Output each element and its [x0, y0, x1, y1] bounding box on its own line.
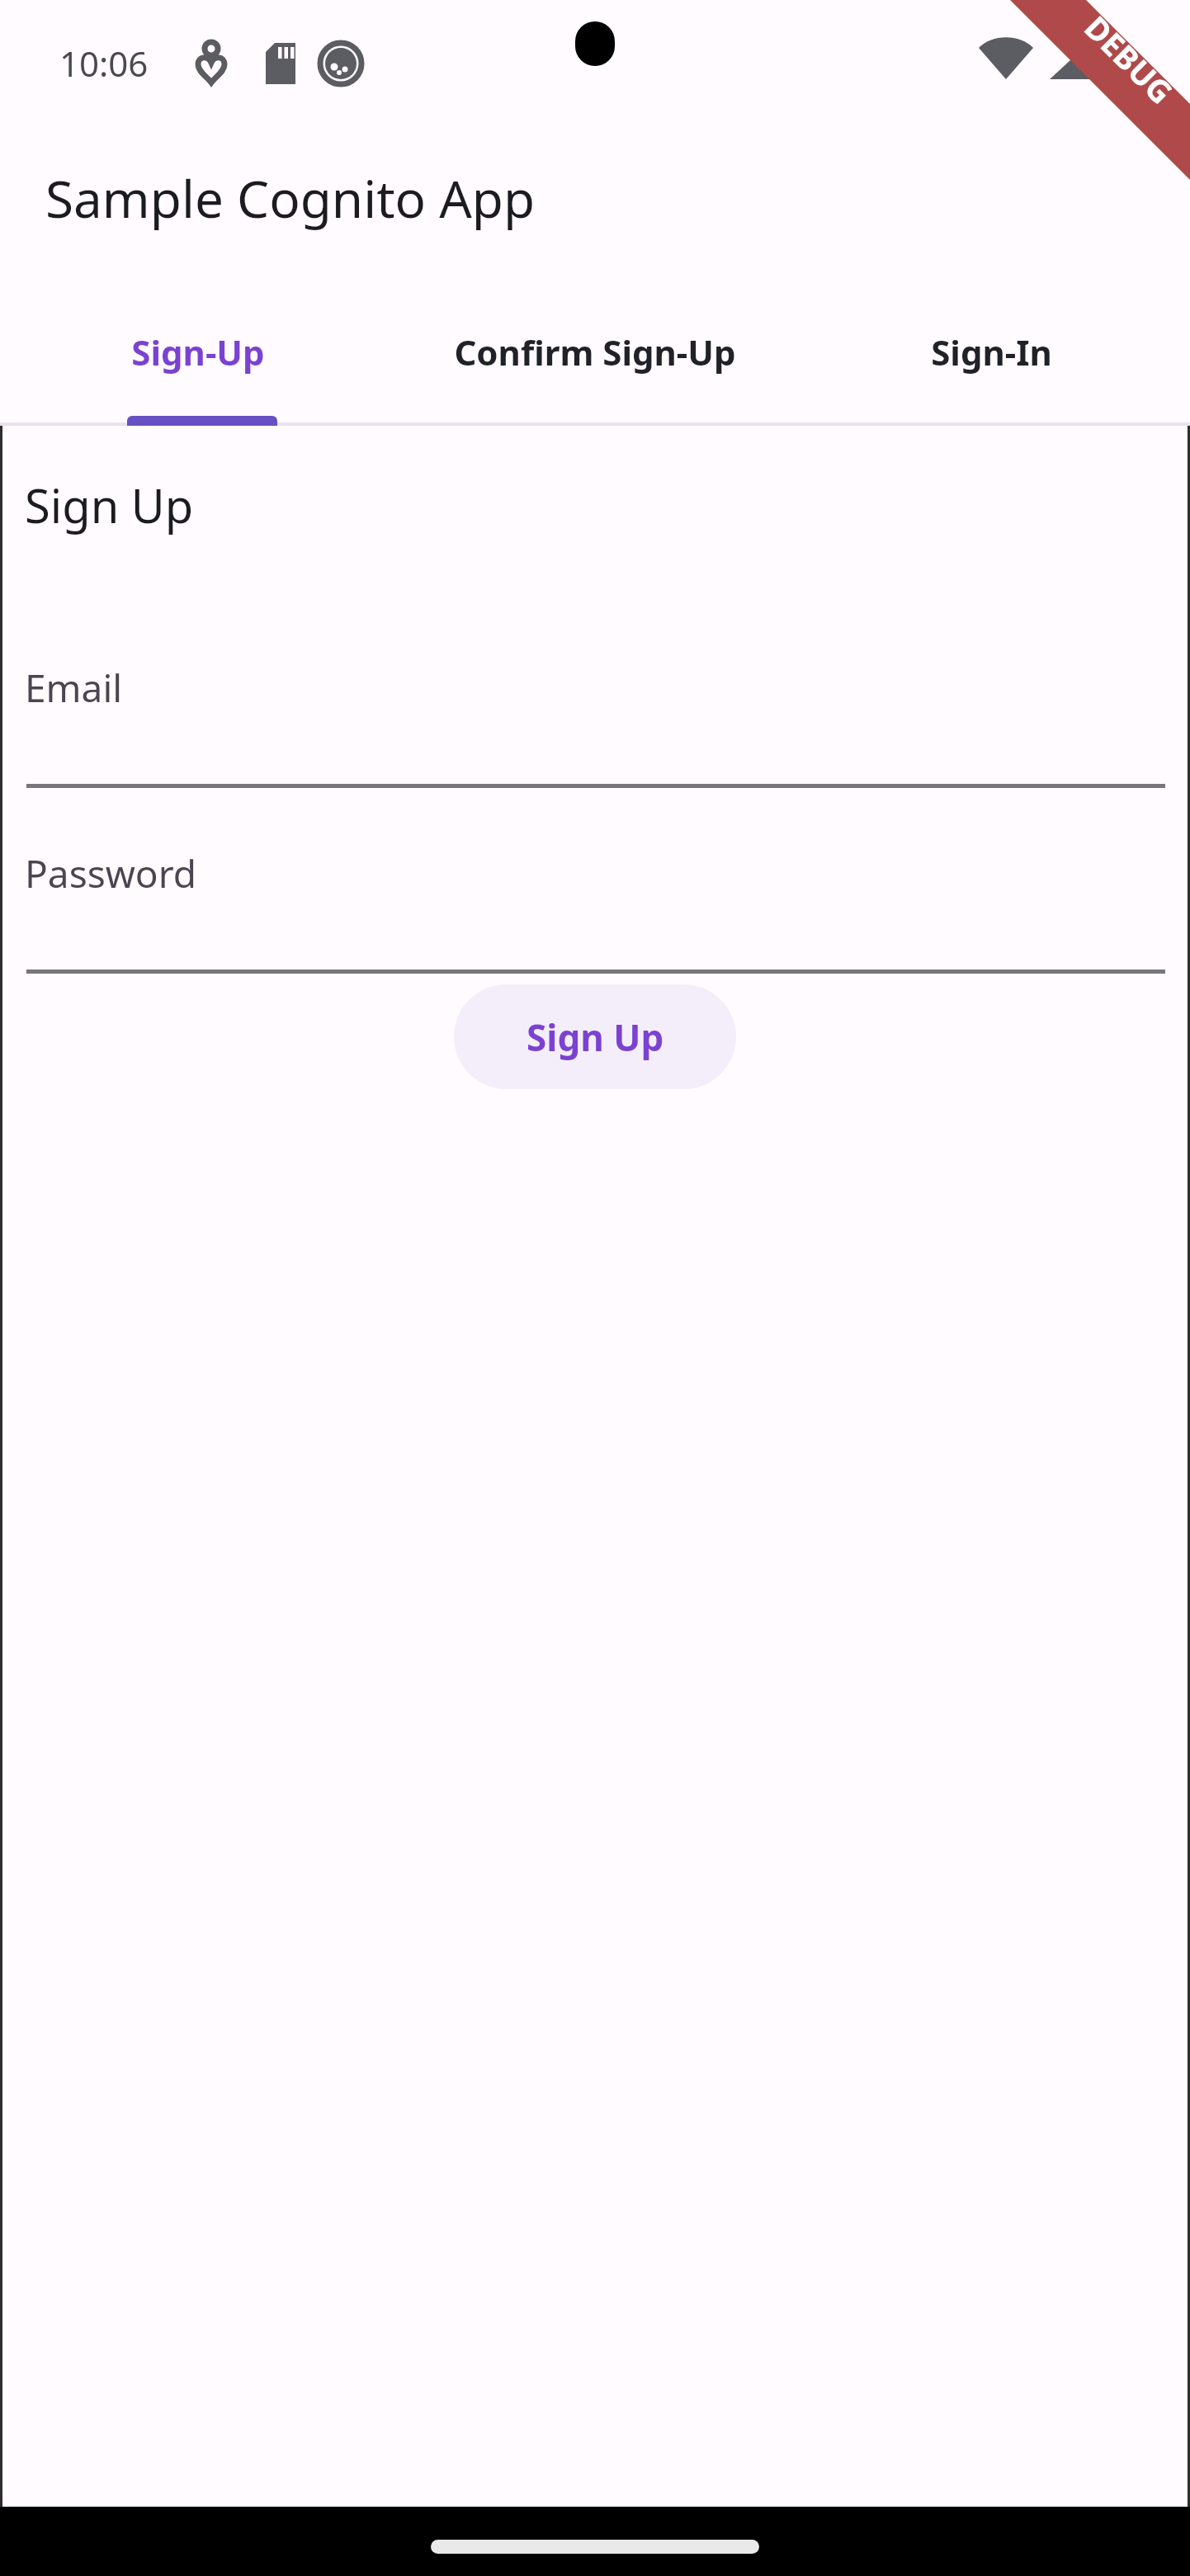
- button[interactable]: Sign Up: [454, 984, 736, 1089]
- staticText: Confirm Sign-Up: [454, 328, 736, 375]
- staticText: Sample Cognito App: [45, 163, 536, 233]
- button[interactable]: Confirm Sign-Up: [396, 294, 793, 426]
- button[interactable]: Password: [0, 813, 1190, 974]
- button[interactable]: Sign-Up: [0, 294, 396, 426]
- staticText: Password: [25, 847, 197, 899]
- staticText: Sign Up: [25, 474, 194, 536]
- staticText: Email: [25, 662, 123, 714]
- staticText: Sign-Up: [131, 328, 265, 375]
- staticText: DEBUG: [1076, 6, 1183, 113]
- button[interactable]: Email: [0, 627, 1190, 788]
- button[interactable]: Sign-In: [793, 294, 1190, 426]
- staticText: Sign-In: [931, 328, 1052, 375]
- staticText: 10:06: [59, 40, 149, 87]
- staticText: Sign Up: [527, 1012, 664, 1062]
